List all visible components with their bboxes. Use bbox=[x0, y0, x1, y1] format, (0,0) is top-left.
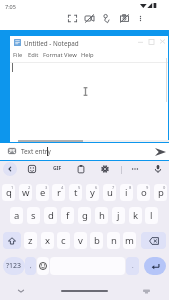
staticText: 4 bbox=[61, 185, 64, 190]
staticText: i bbox=[125, 186, 128, 199]
button[interactable]: File bbox=[12, 50, 24, 60]
button[interactable]: y bbox=[86, 184, 99, 201]
button[interactable]: e bbox=[36, 184, 49, 201]
button[interactable]: n bbox=[107, 232, 120, 249]
button[interactable]: GIF bbox=[49, 163, 65, 174]
button[interactable]: More options bbox=[133, 11, 147, 25]
button[interactable]: s bbox=[27, 207, 40, 224]
button[interactable]: Send bbox=[153, 145, 167, 159]
button[interactable]: x bbox=[41, 232, 54, 249]
button[interactable]: Shift bbox=[3, 232, 21, 249]
staticText: p bbox=[158, 186, 164, 199]
button[interactable]: Back bbox=[3, 162, 17, 176]
button[interactable]: Edit bbox=[27, 50, 40, 60]
staticText: GIF bbox=[53, 165, 62, 172]
button[interactable]: Switch keyboard bbox=[139, 284, 153, 298]
button[interactable]: t bbox=[69, 184, 82, 201]
button[interactable]: u bbox=[103, 184, 116, 201]
staticText: View bbox=[64, 51, 77, 59]
button[interactable]: Backspace bbox=[141, 232, 166, 249]
staticText: x bbox=[45, 234, 51, 247]
staticText: f bbox=[66, 209, 70, 222]
button[interactable]: f bbox=[61, 207, 74, 224]
button[interactable]: Fullscreen bbox=[65, 11, 79, 25]
staticText: r bbox=[57, 186, 61, 199]
staticText: 3 bbox=[45, 185, 48, 190]
staticText: 6 bbox=[95, 185, 98, 190]
staticText: File bbox=[13, 51, 23, 59]
staticText: 8 bbox=[129, 185, 132, 190]
staticText: 1 bbox=[11, 185, 14, 190]
button[interactable]: c bbox=[57, 232, 70, 249]
button[interactable]: o bbox=[137, 184, 150, 201]
button[interactable]: No video bbox=[82, 11, 96, 25]
button[interactable]: d bbox=[44, 207, 57, 224]
staticText: 7:05 bbox=[5, 3, 16, 10]
button[interactable]: Emoji bbox=[37, 257, 49, 275]
staticText: . bbox=[132, 262, 134, 270]
staticText: 5 bbox=[78, 185, 81, 190]
staticText: o bbox=[141, 186, 147, 199]
staticText: h bbox=[99, 209, 105, 222]
staticText: Format bbox=[43, 51, 63, 59]
staticText: u bbox=[107, 186, 113, 199]
staticText: 0 bbox=[163, 185, 166, 190]
staticText: y bbox=[90, 186, 95, 199]
staticText: l bbox=[150, 209, 153, 222]
button[interactable]: w bbox=[19, 184, 32, 201]
button[interactable]: Help bbox=[80, 50, 95, 60]
button[interactable]: Period bbox=[126, 257, 139, 275]
staticText: z bbox=[28, 234, 33, 247]
button[interactable]: Comma bbox=[25, 257, 36, 275]
button[interactable]: m bbox=[123, 232, 136, 249]
staticText: 7 bbox=[112, 185, 115, 190]
button[interactable]: Pointer bbox=[99, 11, 113, 25]
button[interactable]: p bbox=[154, 184, 167, 201]
staticText: d bbox=[48, 209, 54, 222]
button[interactable]: l bbox=[145, 207, 158, 224]
staticText: w bbox=[22, 186, 30, 199]
button[interactable]: q bbox=[2, 184, 15, 201]
staticText: Edit bbox=[28, 51, 39, 59]
button[interactable]: Settings bbox=[98, 162, 112, 176]
button[interactable]: No screenshot bbox=[117, 11, 131, 25]
button[interactable]: View bbox=[63, 50, 78, 60]
button[interactable]: k bbox=[129, 207, 142, 224]
button[interactable]: a bbox=[10, 207, 23, 224]
staticText: b bbox=[94, 234, 100, 247]
staticText: Help bbox=[81, 51, 94, 59]
button[interactable]: g bbox=[78, 207, 91, 224]
staticText: 2 bbox=[28, 185, 31, 190]
staticText: ?123 bbox=[6, 261, 22, 271]
button[interactable]: Stickers bbox=[25, 162, 39, 176]
button[interactable]: r bbox=[52, 184, 65, 201]
button[interactable]: Voice input bbox=[151, 162, 165, 176]
staticText: g bbox=[82, 209, 88, 222]
staticText: s bbox=[31, 209, 36, 222]
button[interactable]: Hide keyboard bbox=[14, 284, 28, 298]
button[interactable]: h bbox=[95, 207, 108, 224]
staticText: c bbox=[61, 234, 66, 247]
button[interactable]: z bbox=[24, 232, 37, 249]
staticText: Text entry bbox=[21, 147, 51, 156]
button[interactable]: Symbols bbox=[3, 257, 25, 275]
button[interactable]: v bbox=[74, 232, 87, 249]
staticText: t bbox=[74, 186, 78, 199]
button[interactable]: Clipboard bbox=[74, 162, 88, 176]
staticText: m bbox=[125, 234, 134, 247]
staticText: , bbox=[30, 262, 32, 270]
button[interactable]: Enter bbox=[144, 257, 166, 275]
button[interactable]: j bbox=[112, 207, 125, 224]
button[interactable]: Format bbox=[42, 50, 64, 60]
staticText: q bbox=[6, 186, 12, 199]
button[interactable]: b bbox=[90, 232, 103, 249]
button[interactable]: More options bbox=[128, 162, 142, 176]
staticText: v bbox=[78, 234, 83, 247]
staticText: k bbox=[133, 209, 139, 222]
staticText: a bbox=[14, 209, 20, 222]
staticText: Untitled - Notepad bbox=[24, 39, 79, 48]
staticText: 9 bbox=[146, 185, 149, 190]
staticText: e bbox=[40, 186, 46, 199]
button[interactable]: i bbox=[120, 184, 133, 201]
